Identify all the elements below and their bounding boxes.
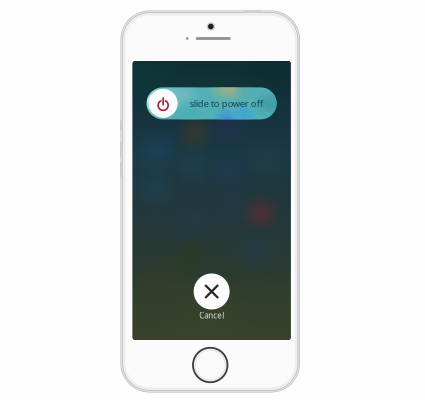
button[interactable]: slide to power off [147,87,277,119]
staticText: Cancel [199,310,224,321]
staticText: slide to power off [190,97,263,110]
button[interactable]: Home [190,345,230,385]
button[interactable]: Cancel [183,271,241,327]
